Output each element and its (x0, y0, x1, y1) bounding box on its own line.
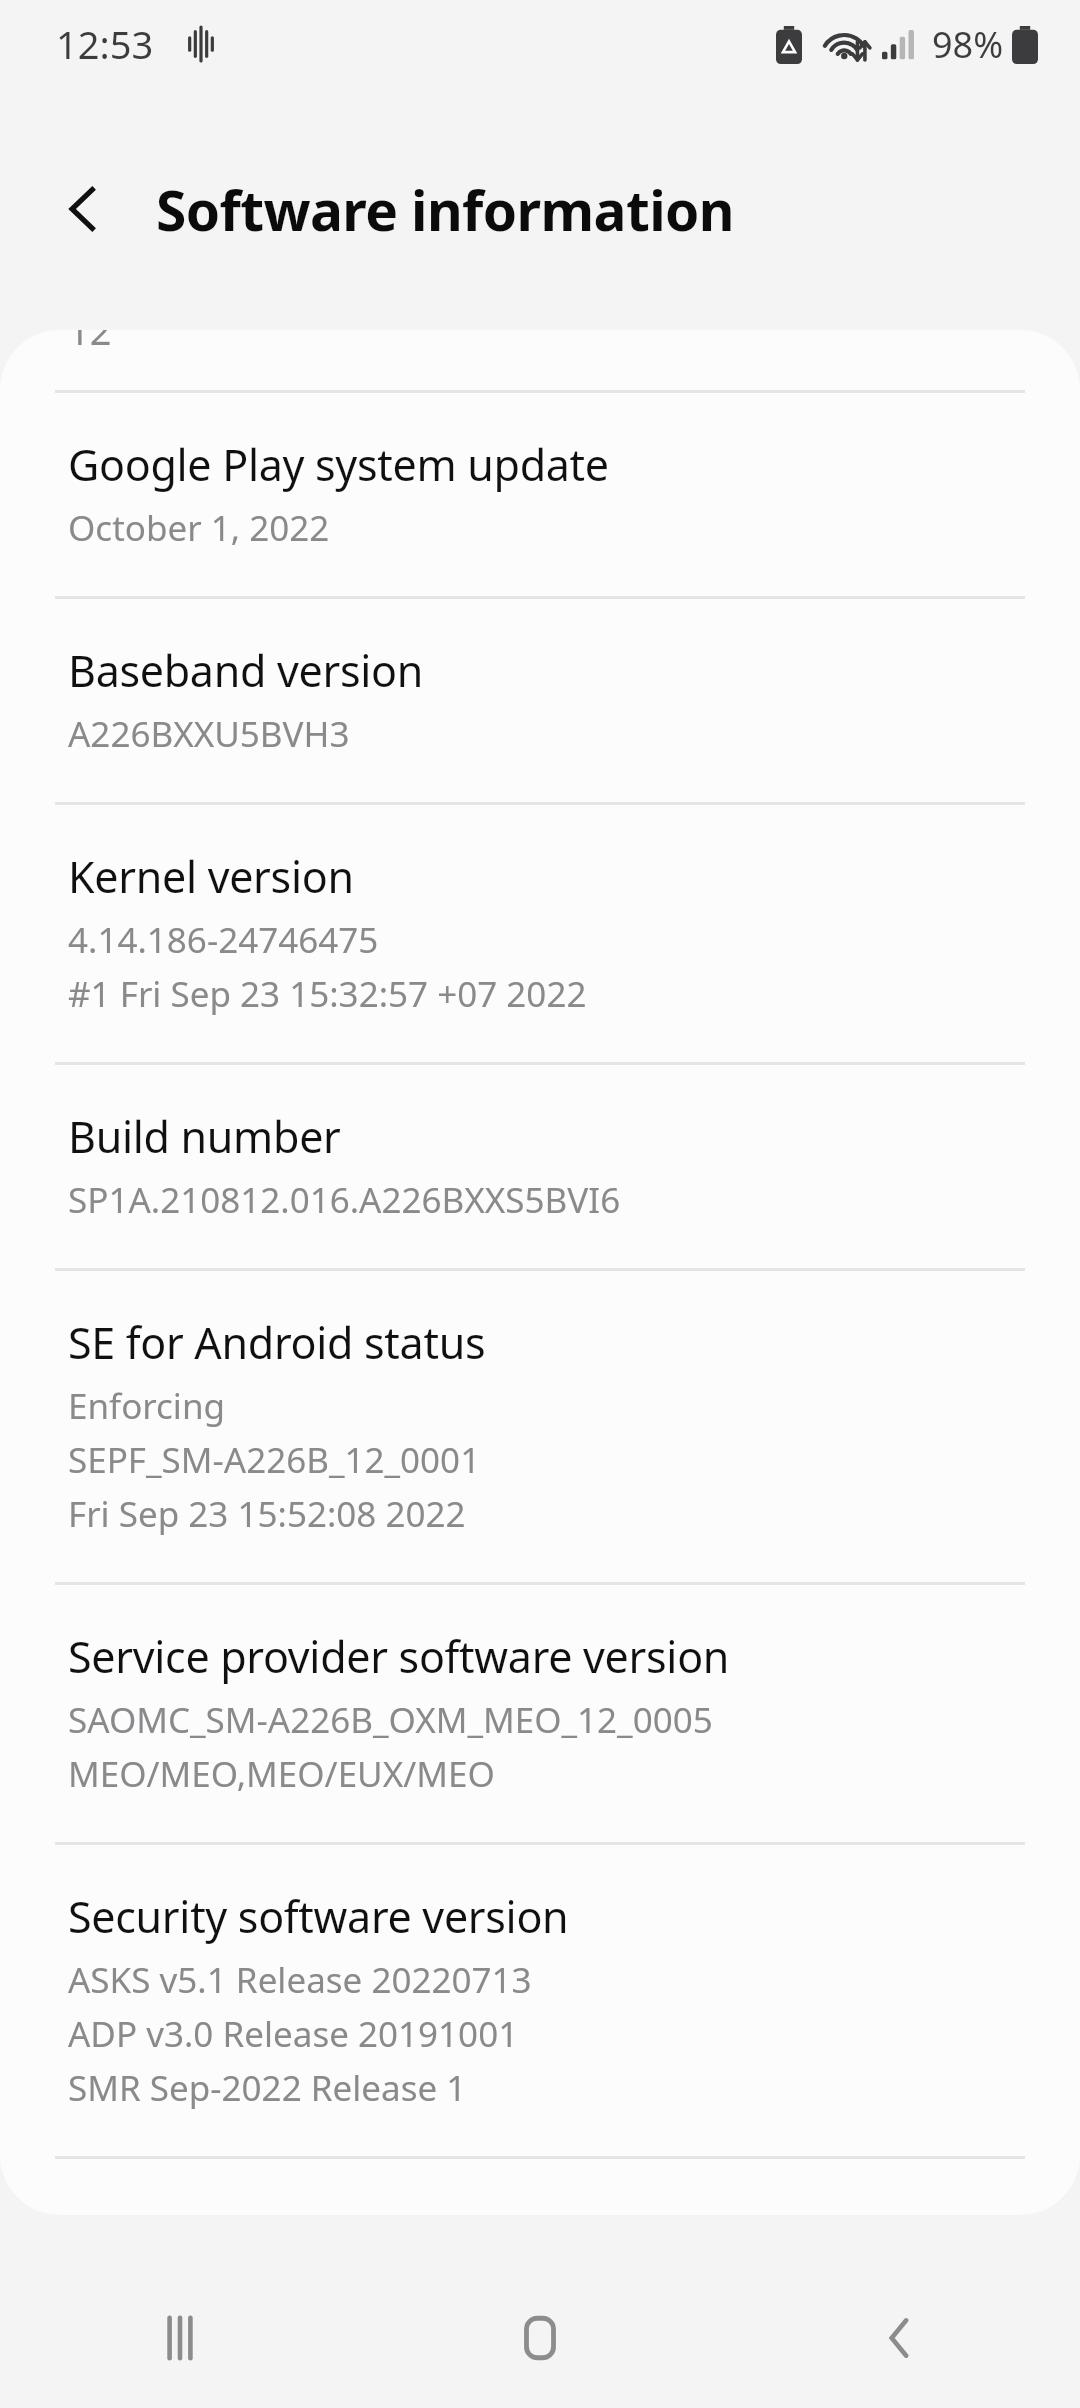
button[interactable]: Navigate up (36, 161, 132, 257)
staticText: SP1A.210812.016.A226BXXS5BVI6 (68, 1176, 621, 1224)
staticText: SMR Sep-2022 Release 1 (68, 2064, 467, 2112)
staticText: 12 (68, 330, 112, 356)
staticText: SE for Android status (68, 1313, 486, 1372)
button[interactable]: Security software version (0, 1845, 1080, 2156)
button[interactable]: SE for Android status (0, 1271, 1080, 1582)
staticText: Google Play system update (68, 435, 609, 494)
staticText: SAOMC_SM-A226B_OXM_MEO_12_0005 (68, 1696, 713, 1744)
button[interactable]: Build number (0, 1065, 1080, 1268)
staticText: Build number (68, 1107, 341, 1166)
button[interactable]: Back (720, 2268, 1080, 2408)
staticText: A226BXXU5BVH3 (68, 710, 350, 758)
staticText: MEO/MEO,MEO/EUX/MEO (68, 1750, 495, 1798)
staticText: ASKS v5.1 Release 20220713 (68, 1956, 532, 2004)
staticText: October 1, 2022 (68, 504, 330, 552)
staticText: 12:53 (56, 18, 154, 70)
staticText: Enforcing (68, 1382, 226, 1430)
button[interactable]: Kernel version (0, 805, 1080, 1062)
staticText: 4.14.186-24746475 (68, 916, 379, 964)
staticText: Security software version (68, 1887, 569, 1946)
staticText: Fri Sep 23 15:52:08 2022 (68, 1490, 466, 1538)
button[interactable]: Home (360, 2268, 720, 2408)
staticText: Software information (156, 172, 734, 247)
button[interactable]: Baseband version (0, 599, 1080, 802)
button[interactable]: Recent apps (0, 2268, 360, 2408)
staticText: SEPF_SM-A226B_12_0001 (68, 1436, 481, 1484)
button[interactable]: Google Play system update (0, 393, 1080, 596)
staticText: Kernel version (68, 847, 354, 906)
staticText: Baseband version (68, 641, 424, 700)
staticText: #1 Fri Sep 23 15:32:57 +07 2022 (68, 970, 587, 1018)
staticText: Service provider software version (68, 1627, 730, 1686)
staticText: ADP v3.0 Release 20191001 (68, 2010, 519, 2058)
staticText: 98% (932, 20, 1004, 69)
button[interactable]: Service provider software version (0, 1585, 1080, 1842)
